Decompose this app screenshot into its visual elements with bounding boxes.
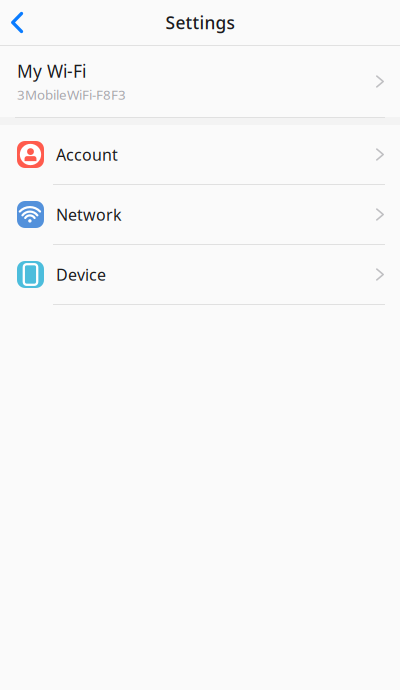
button[interactable]: My Wi-Fi: [0, 46, 400, 117]
staticText: Device: [56, 264, 106, 285]
staticText: Settings: [165, 11, 234, 34]
staticText: Network: [56, 204, 122, 225]
staticText: Account: [56, 144, 118, 165]
button[interactable]: Account: [0, 125, 400, 184]
staticText: 3MobileWiFi-F8F3: [17, 86, 126, 103]
button[interactable]: Network: [0, 185, 400, 244]
button[interactable]: Device: [0, 245, 400, 304]
button[interactable]: Back: [0, 0, 40, 45]
staticText: My Wi-Fi: [17, 60, 86, 83]
